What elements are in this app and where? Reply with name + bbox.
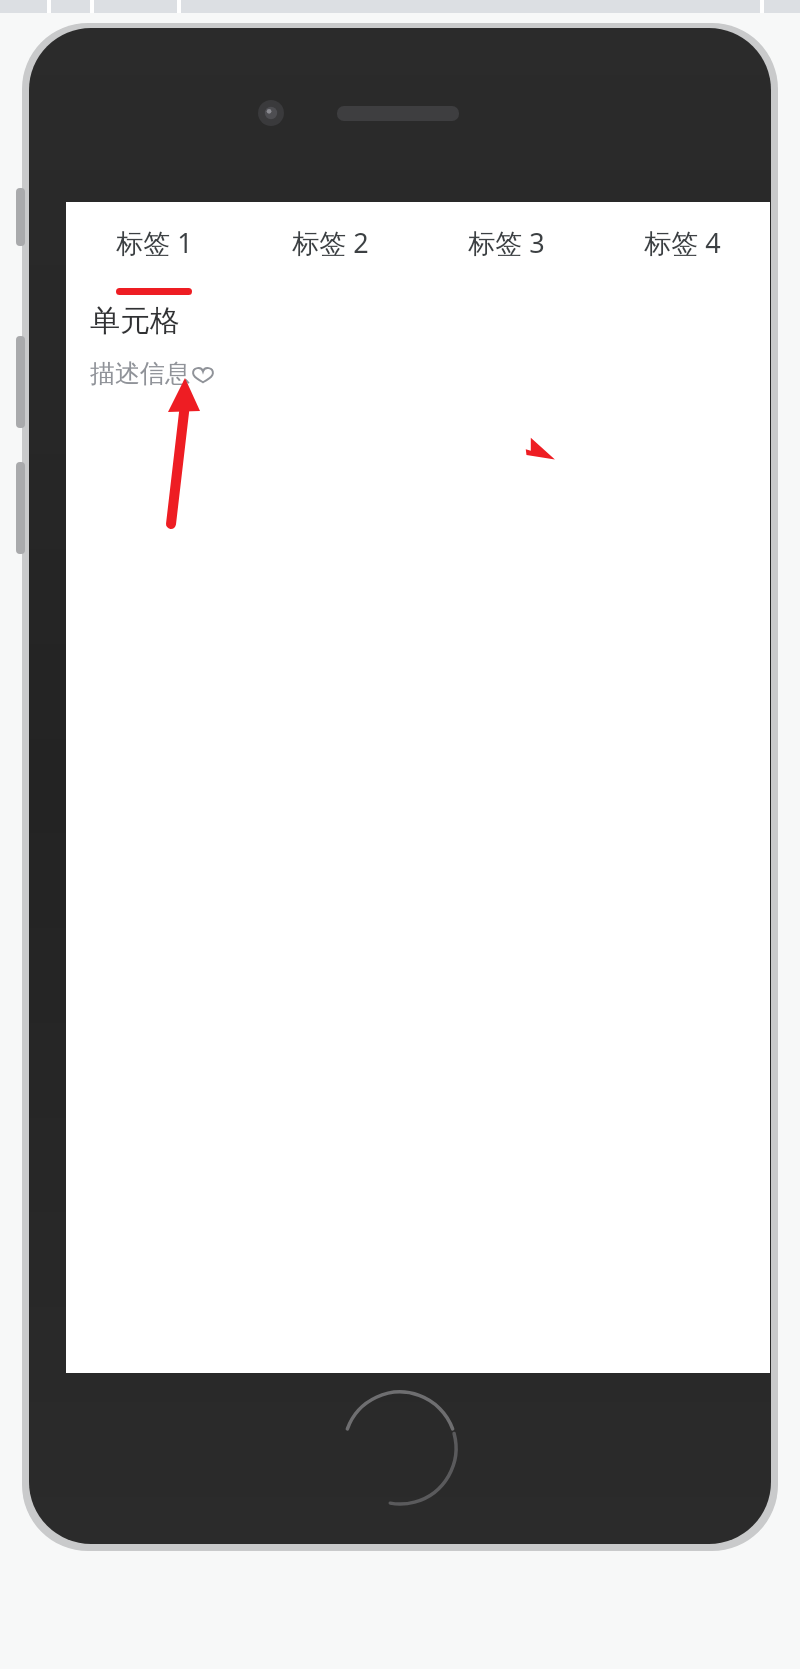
staticText: 描述信息 — [90, 358, 190, 389]
staticText: 标签 3 — [468, 224, 545, 261]
button[interactable]: 标签 2 — [242, 202, 418, 296]
other: Volume up — [16, 336, 25, 428]
staticText: 单元格 — [90, 302, 180, 340]
other: Silent switch — [16, 188, 25, 246]
button[interactable]: 单元格 — [66, 296, 770, 389]
button[interactable]: 标签 3 — [418, 202, 594, 296]
staticText: 标签 2 — [292, 224, 369, 261]
staticText: 标签 1 — [116, 224, 193, 261]
other: Volume down — [16, 462, 25, 554]
staticText: 标签 4 — [644, 224, 721, 261]
other: Favorite — [190, 361, 216, 387]
button[interactable]: 标签 1 — [66, 202, 242, 296]
button[interactable]: 标签 4 — [594, 202, 770, 296]
